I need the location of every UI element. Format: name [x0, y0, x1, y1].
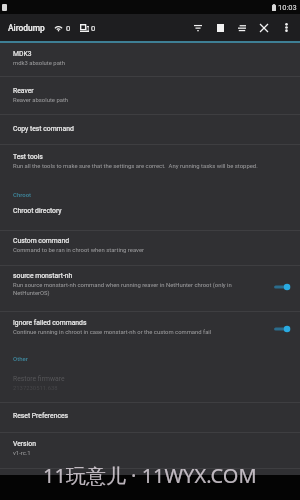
button[interactable]: Sort: [231, 14, 253, 41]
staticText: Restore firmware: [13, 375, 65, 383]
staticText: Reaver absolute path: [13, 97, 69, 104]
staticText: Ignore failed commands: [13, 319, 87, 327]
button[interactable]: More options: [275, 14, 297, 41]
staticText: 11玩意儿 · 11WYX.COM: [43, 462, 257, 489]
button[interactable]: Custom command: [0, 231, 300, 265]
button[interactable]: Toggle: [273, 323, 291, 335]
staticText: MDK3: [13, 50, 32, 58]
staticText: source monstart-nh: [13, 272, 73, 280]
button[interactable]: Toggle: [273, 281, 291, 293]
button[interactable]: MDK3: [0, 43, 300, 76]
staticText: Version: [13, 440, 36, 448]
staticText: 0: [91, 24, 96, 33]
staticText: Reset Preferences: [13, 412, 69, 420]
button[interactable]: Filter: [187, 14, 209, 41]
staticText: Command to be ran in chroot when startin…: [13, 247, 145, 254]
staticText: Chroot directory: [13, 207, 62, 215]
button[interactable]: Version: [0, 433, 300, 469]
staticText: 10:03: [278, 3, 297, 12]
staticText: mdk3 absolute path: [13, 60, 66, 67]
button[interactable]: Chroot directory: [0, 202, 300, 230]
staticText: Chroot: [13, 191, 32, 198]
staticText: 0: [66, 24, 71, 33]
button[interactable]: Ignore failed commands: [0, 312, 300, 345]
button[interactable]: Reset Preferences: [0, 403, 300, 432]
staticText: Run source monstart-nh command when runn…: [13, 282, 232, 296]
button[interactable]: Test tools: [0, 145, 300, 179]
staticText: Reaver: [13, 87, 34, 95]
staticText: Other: [13, 355, 28, 362]
staticText: 2137230511.638: [13, 385, 58, 392]
staticText: Copy test command: [13, 125, 74, 133]
button[interactable]: Close: [253, 14, 275, 41]
button[interactable]: Reaver: [0, 77, 300, 114]
button[interactable]: source monstart-nh: [0, 266, 300, 311]
staticText: Run all the tools to make sure that the …: [13, 163, 258, 170]
staticText: Custom command: [13, 237, 69, 245]
staticText: Continue running in chroot in case monst…: [13, 329, 212, 336]
staticText: v1-rc.1: [13, 450, 31, 457]
staticText: Test tools: [13, 153, 43, 161]
button[interactable]: Stop: [209, 14, 231, 41]
staticText: Airodump: [8, 23, 45, 33]
button[interactable]: Copy test command: [0, 115, 300, 144]
